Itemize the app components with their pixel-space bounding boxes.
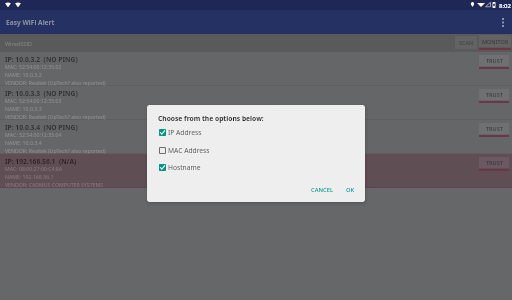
- staticText: WiredSSID: [5, 40, 33, 47]
- staticText: MAC: 08:00:27:00:C4:8A: [5, 165, 63, 172]
- button[interactable]: More options: [494, 10, 512, 34]
- button[interactable]: IP Address: [159, 126, 279, 138]
- button[interactable]: MONITOR: [479, 35, 511, 50]
- button[interactable]: TRUST: [479, 157, 509, 168]
- staticText: Hostname: [168, 163, 201, 172]
- button[interactable]: TRUST: [479, 55, 509, 66]
- staticText: IP: 10.0.3.4 (NO PING): [5, 123, 78, 132]
- staticText: MONITOR: [482, 38, 509, 45]
- staticText: NAME: 192.168.56.1: [5, 173, 54, 180]
- staticText: CANCEL: [311, 186, 333, 194]
- staticText: MAC Address: [168, 146, 210, 155]
- button[interactable]: IP: 10.0.3.3 (NO PING): [0, 86, 512, 120]
- staticText: VENDOR: Realtek (UpTech? also reported): [5, 147, 106, 154]
- staticText: VENDOR: Realtek (UpTech? also reported): [5, 113, 106, 120]
- staticText: OK: [346, 186, 355, 194]
- button[interactable]: MAC Address: [159, 144, 279, 156]
- button[interactable]: IP: 10.0.3.2 (NO PING): [0, 52, 512, 86]
- button[interactable]: TRUST: [479, 123, 509, 134]
- staticText: TRUST: [486, 57, 503, 64]
- staticText: MAC: 52:54:00:12:35:02: [5, 63, 62, 70]
- button[interactable]: IP: 192.168.56.1 (N/A): [0, 154, 512, 188]
- staticText: MAC: 52:54:00:12:35:03: [5, 97, 62, 104]
- staticText: TRUST: [486, 91, 503, 98]
- staticText: NAME: 10.0.3.3: [5, 105, 42, 112]
- button[interactable]: Hostname: [159, 161, 279, 173]
- button[interactable]: OK: [343, 183, 357, 196]
- staticText: TRUST: [486, 125, 503, 132]
- staticText: IP: 192.168.56.1 (N/A): [5, 157, 77, 166]
- staticText: SCAN: [459, 39, 474, 46]
- button[interactable]: SCAN: [455, 36, 477, 49]
- staticText: IP Address: [168, 128, 202, 137]
- staticText: Easy WiFi Alert: [6, 18, 55, 27]
- button[interactable]: IP: 10.0.3.4 (NO PING): [0, 120, 512, 154]
- staticText: NAME: 10.0.3.4: [5, 139, 42, 146]
- staticText: 8:02: [499, 2, 511, 10]
- staticText: TRUST: [486, 159, 503, 166]
- staticText: VENDOR: Realtek (UpTech? also reported): [5, 79, 106, 86]
- staticText: NAME: 10.0.3.2: [5, 71, 42, 78]
- staticText: IP: 10.0.3.2 (NO PING): [5, 55, 78, 64]
- staticText: MAC: 52:54:00:12:35:04: [5, 131, 62, 138]
- staticText: Choose from the options below:: [158, 114, 264, 123]
- button[interactable]: CANCEL: [310, 183, 334, 196]
- staticText: IP: 10.0.3.3 (NO PING): [5, 89, 78, 98]
- staticText: VENDOR: CADMUS COMPUTER SYSTEMS: [5, 181, 103, 188]
- button[interactable]: TRUST: [479, 89, 509, 100]
